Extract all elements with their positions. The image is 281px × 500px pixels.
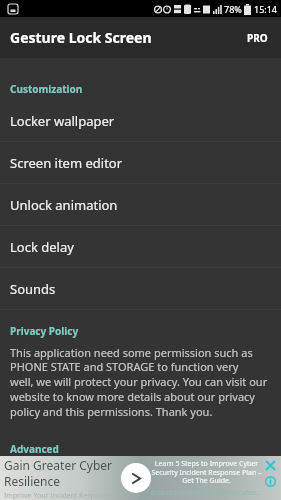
button[interactable]: PRO [247, 31, 268, 45]
button[interactable]: Screen item editor [0, 142, 281, 183]
staticText: Screen item editor [10, 154, 123, 172]
staticText: This application need some permission su… [10, 345, 268, 420]
button[interactable]: Gain Greater Cyber [0, 456, 281, 500]
staticText: Learn 5 Steps to Improve Cyber Security … [151, 459, 262, 485]
staticText: Locker wallpaper [10, 112, 115, 130]
staticText: Improve Your Incident Response [4, 491, 111, 500]
staticText: 78% [224, 3, 242, 15]
staticText: Sounds [10, 280, 56, 298]
staticText: Unlock animation [10, 196, 118, 214]
staticText: Customization [10, 82, 83, 96]
button[interactable] [266, 461, 275, 470]
staticText: Info.resilientsystems.com/Cyber... [151, 488, 262, 498]
button[interactable]: Locker wallpaper [0, 100, 281, 141]
staticText: Advanced [10, 442, 59, 456]
staticText: 15:14 [254, 3, 278, 15]
button[interactable]: Lock delay [0, 226, 281, 267]
staticText: Privacy Policy [10, 324, 79, 338]
staticText: Resilience [4, 473, 60, 489]
button[interactable]: Sounds [0, 268, 281, 309]
staticText: Gain Greater Cyber [4, 457, 113, 473]
staticText: Gesture Lock Screen [10, 28, 152, 47]
button[interactable] [265, 476, 276, 487]
staticText: Lock delay [10, 238, 74, 256]
button[interactable]: Unlock animation [0, 184, 281, 225]
